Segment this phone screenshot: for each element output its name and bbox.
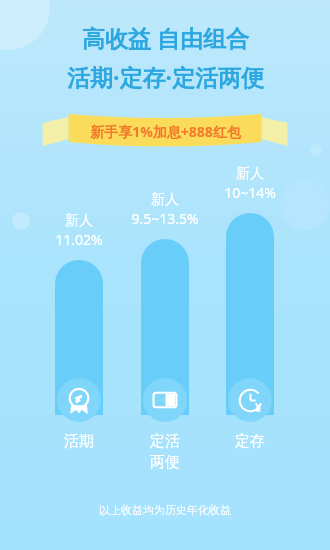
- staticText: 定存: [235, 432, 265, 451]
- button[interactable]: [55, 260, 103, 415]
- staticText: 以上收益均为历史年化收益: [99, 503, 231, 517]
- staticText: 活期·定存·定活两便: [67, 61, 264, 92]
- staticText: 高收益 自由组合: [82, 22, 249, 53]
- button[interactable]: [226, 213, 274, 415]
- staticText: 新人 10~14%: [224, 165, 276, 202]
- staticText: 新人 11.02%: [55, 212, 103, 249]
- button[interactable]: 活期: [39, 378, 119, 451]
- staticText: 活期: [64, 432, 94, 451]
- staticText: 定活 两便: [150, 432, 180, 471]
- button[interactable]: [141, 239, 189, 415]
- button[interactable]: 定活两便: [125, 378, 205, 471]
- staticText: 新手享1%加息+888红包: [90, 122, 241, 141]
- button[interactable]: 定存: [210, 378, 290, 451]
- staticText: 新人 9.5~13.5%: [131, 191, 199, 228]
